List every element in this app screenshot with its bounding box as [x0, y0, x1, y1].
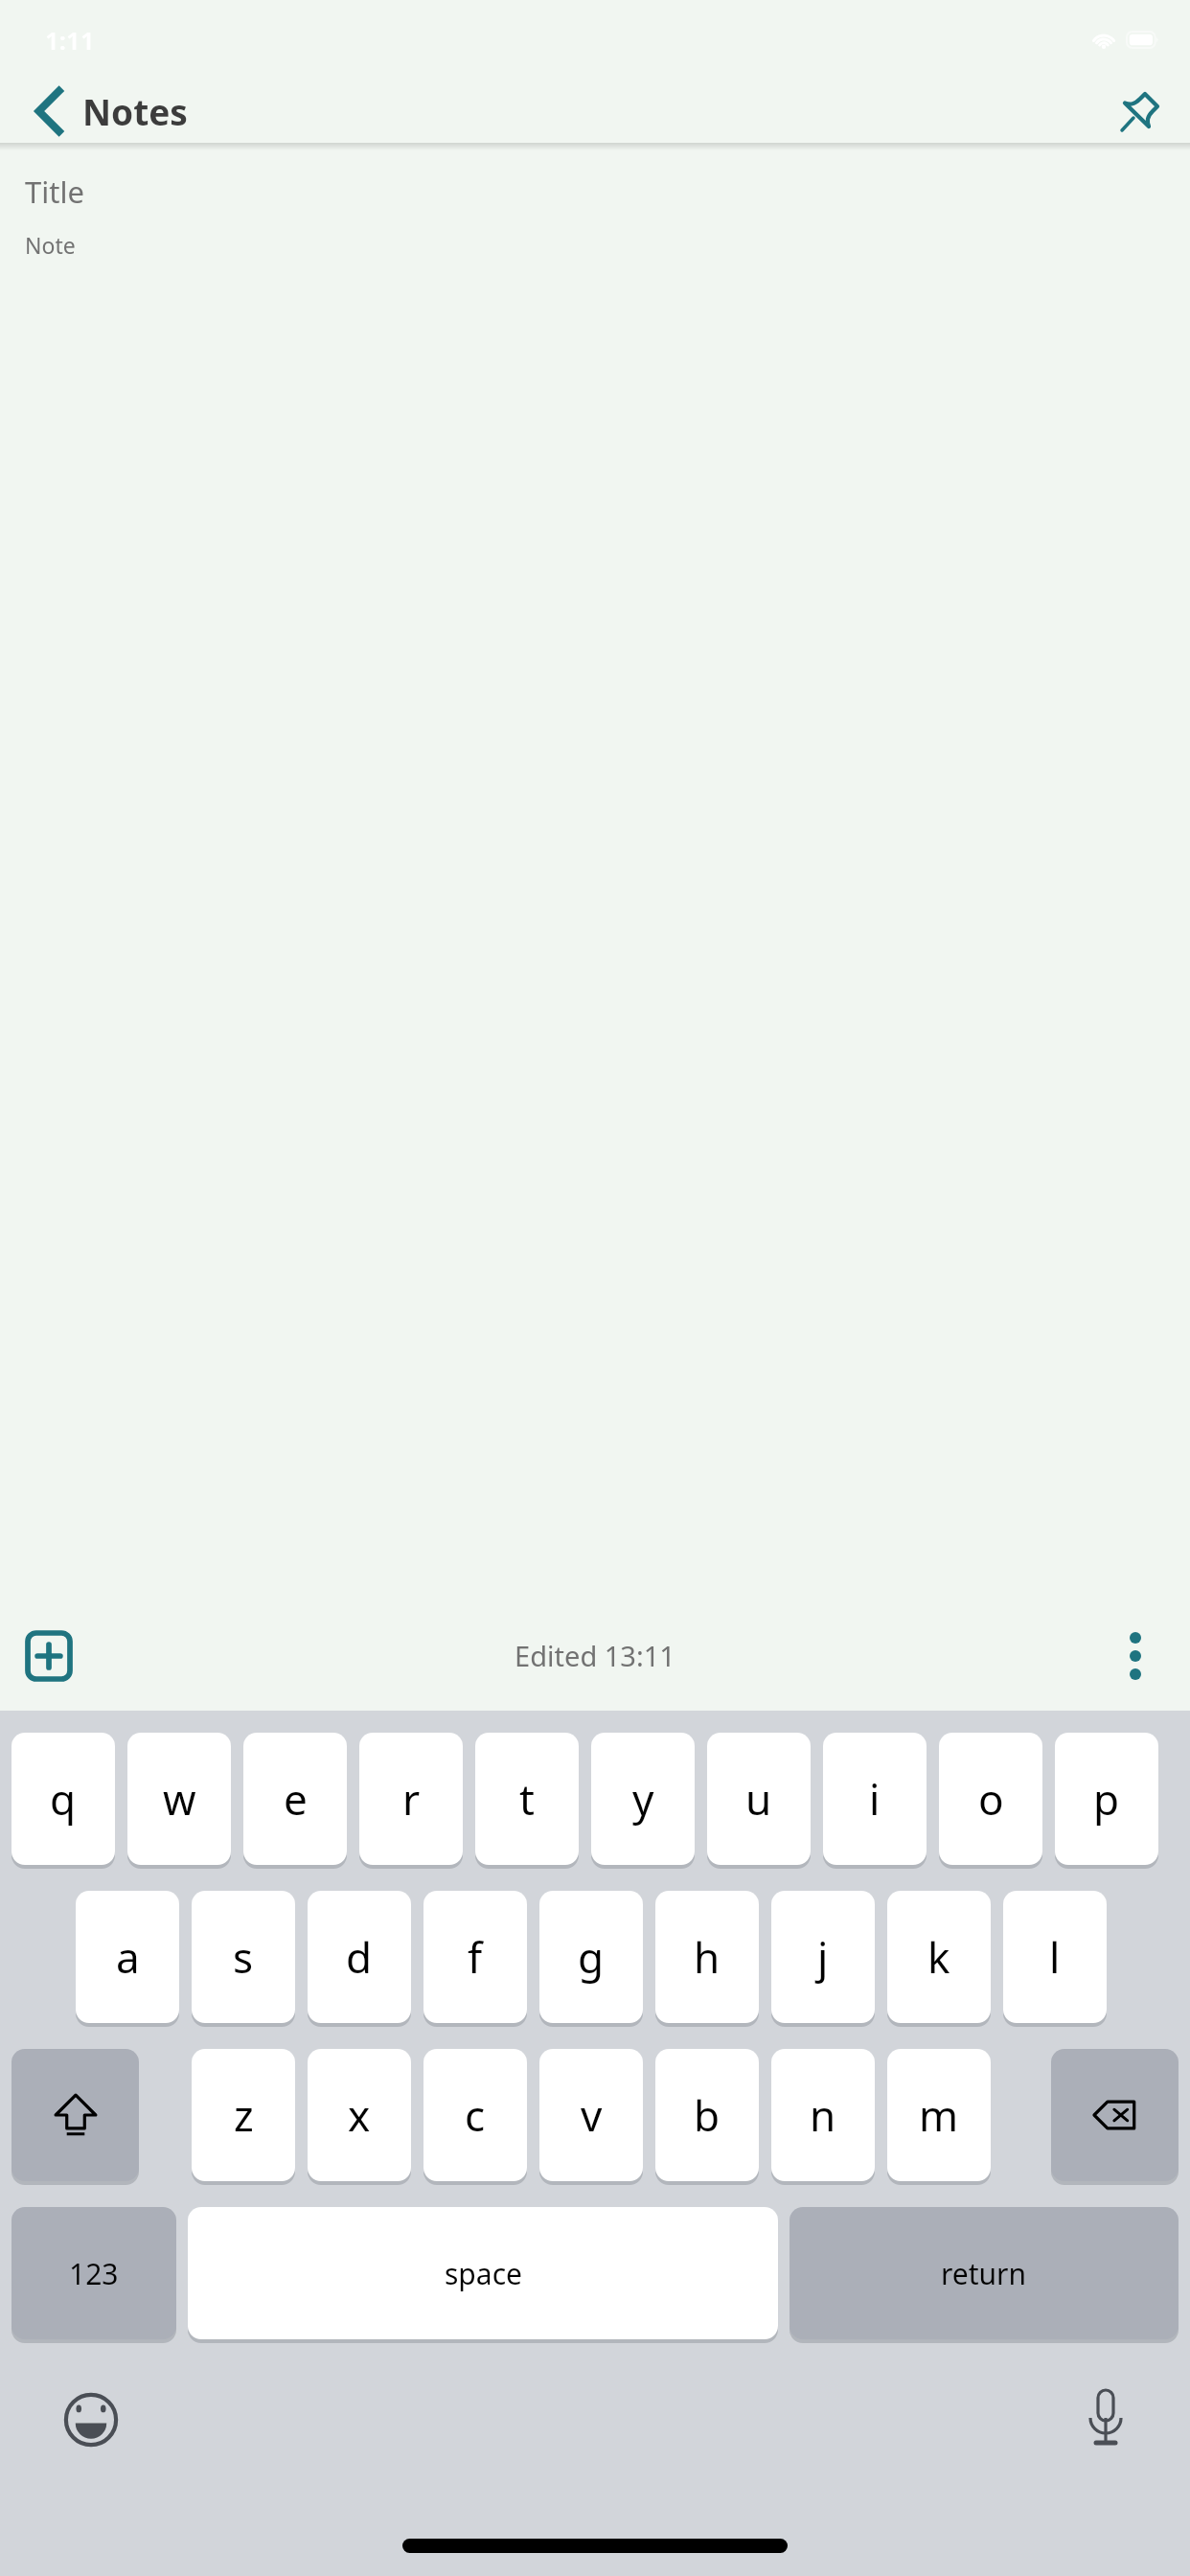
staticText: Note — [25, 230, 76, 260]
button[interactable]: v — [539, 2049, 643, 2185]
button[interactable]: h — [655, 1891, 759, 2027]
staticText: d — [346, 1928, 373, 1986]
button[interactable]: space — [188, 2207, 778, 2343]
button[interactable]: b — [655, 2049, 759, 2185]
staticText: t — [519, 1770, 535, 1828]
button[interactable]: c — [423, 2049, 527, 2185]
staticText: w — [163, 1770, 196, 1828]
staticText: h — [694, 1928, 721, 1986]
button[interactable]: x — [308, 2049, 411, 2185]
staticText: l — [1049, 1928, 1061, 1986]
staticText: e — [284, 1770, 308, 1828]
button[interactable]: k — [887, 1891, 991, 2027]
button[interactable]: m — [887, 2049, 991, 2185]
button[interactable]: z — [192, 2049, 295, 2185]
button[interactable]: w — [127, 1733, 231, 1869]
button[interactable]: 123 — [11, 2207, 176, 2343]
button[interactable]: q — [11, 1733, 115, 1869]
staticText: c — [465, 2086, 486, 2144]
staticText: Notes — [82, 87, 188, 135]
button[interactable]: r — [359, 1733, 463, 1869]
button[interactable]: o — [939, 1733, 1042, 1869]
button[interactable]: l — [1003, 1891, 1107, 2027]
staticText: f — [468, 1928, 483, 1986]
staticText: s — [233, 1928, 254, 1986]
staticText: Edited 13:11 — [515, 1637, 675, 1674]
button[interactable]: a — [76, 1891, 179, 2027]
button[interactable]: Pin note — [1103, 79, 1176, 143]
button[interactable]: n — [771, 2049, 875, 2185]
button[interactable]: More options — [1098, 1619, 1173, 1693]
button[interactable]: Back — [17, 79, 82, 143]
staticText: y — [632, 1770, 654, 1828]
staticText: b — [694, 2086, 721, 2144]
staticText: x — [348, 2086, 371, 2144]
button[interactable]: Shift — [11, 2049, 139, 2185]
staticText: o — [978, 1770, 1004, 1828]
staticText: 123 — [69, 2254, 119, 2293]
button[interactable]: t — [475, 1733, 579, 1869]
button[interactable]: Backspace — [1051, 2049, 1179, 2185]
button[interactable]: Add attachment — [11, 1619, 86, 1693]
staticText: Title — [25, 172, 84, 212]
staticText: a — [116, 1928, 140, 1986]
staticText: k — [927, 1928, 950, 1986]
staticText: r — [402, 1770, 421, 1828]
staticText: n — [810, 2086, 836, 2144]
staticText: return — [941, 2254, 1027, 2293]
staticText: space — [445, 2254, 522, 2293]
button[interactable]: Emoji — [53, 2381, 129, 2458]
staticText: g — [578, 1928, 605, 1986]
button[interactable]: u — [707, 1733, 811, 1869]
button[interactable]: Voice input — [1067, 2381, 1144, 2458]
button[interactable]: return — [790, 2207, 1179, 2343]
staticText: u — [745, 1770, 772, 1828]
button[interactable]: p — [1055, 1733, 1158, 1869]
button[interactable]: d — [308, 1891, 411, 2027]
staticText: j — [817, 1928, 829, 1986]
button[interactable]: s — [192, 1891, 295, 2027]
button[interactable]: g — [539, 1891, 643, 2027]
staticText: z — [234, 2086, 254, 2144]
staticText: q — [50, 1770, 77, 1828]
staticText: m — [919, 2086, 959, 2144]
button[interactable]: i — [823, 1733, 927, 1869]
button[interactable]: f — [423, 1891, 527, 2027]
staticText: v — [581, 2086, 603, 2144]
staticText: 1:11 — [45, 23, 95, 57]
button[interactable]: e — [243, 1733, 347, 1869]
button[interactable]: y — [591, 1733, 695, 1869]
staticText: i — [869, 1770, 881, 1828]
staticText: p — [1093, 1770, 1120, 1828]
button[interactable]: j — [771, 1891, 875, 2027]
